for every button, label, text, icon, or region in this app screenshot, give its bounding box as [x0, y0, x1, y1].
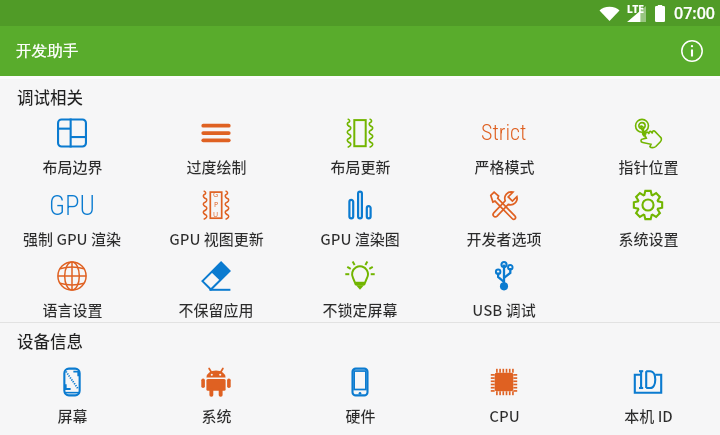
staticText: 不锁定屏幕: [322, 299, 398, 321]
staticText: LTE: [627, 2, 644, 16]
button[interactable]: About: [672, 31, 712, 71]
button[interactable]: CPU: [432, 363, 576, 434]
staticText: 布局更新: [330, 156, 391, 178]
staticText: GPU: [49, 190, 95, 220]
staticText: 严格模式: [474, 156, 535, 178]
staticText: P: [214, 200, 219, 210]
staticText: 开发者选项: [466, 228, 542, 250]
button[interactable]: 硬件: [288, 363, 432, 434]
button[interactable]: 不保留应用: [144, 257, 288, 322]
staticText: Strict: [481, 120, 527, 146]
button[interactable]: 开发者选项: [432, 186, 576, 257]
staticText: 屏幕: [57, 405, 88, 427]
staticText: USB 调试: [472, 299, 536, 321]
button[interactable]: 屏幕: [0, 363, 144, 434]
button[interactable]: 布局更新: [288, 114, 432, 186]
staticText: GPU 视图更新: [169, 228, 264, 250]
button[interactable]: 语言设置: [0, 257, 144, 322]
staticText: 开发助手: [16, 41, 79, 61]
button[interactable]: 本机 ID: [576, 363, 720, 434]
button[interactable]: Strict: [432, 114, 576, 186]
staticText: 系统设置: [618, 228, 679, 250]
staticText: 07:00: [674, 2, 715, 24]
staticText: 指针位置: [618, 156, 679, 178]
staticText: G: [213, 190, 219, 200]
button[interactable]: 过度绘制: [144, 114, 288, 186]
button[interactable]: 系统设置: [576, 186, 720, 257]
staticText: 过度绘制: [186, 156, 247, 178]
staticText: 硬件: [345, 405, 376, 427]
button[interactable]: 系统: [144, 363, 288, 434]
staticText: 语言设置: [42, 299, 103, 321]
button[interactable]: USB 调试: [432, 257, 576, 322]
staticText: GPU 渲染图: [320, 228, 400, 250]
staticText: 设备信息: [17, 329, 83, 353]
staticText: 强制 GPU 渲染: [23, 228, 121, 250]
staticText: 调试相关: [17, 85, 83, 109]
staticText: CPU: [489, 405, 520, 427]
staticText: 系统: [201, 405, 232, 427]
button[interactable]: 不锁定屏幕: [288, 257, 432, 322]
button[interactable]: GPU 渲染图: [288, 186, 432, 257]
staticText: 不保留应用: [178, 299, 254, 321]
staticText: 本机 ID: [624, 405, 673, 427]
button[interactable]: G: [144, 186, 288, 257]
staticText: U: [213, 210, 219, 220]
staticText: 布局边界: [42, 156, 103, 178]
button[interactable]: 布局边界: [0, 114, 144, 186]
button[interactable]: GPU: [0, 186, 144, 257]
button[interactable]: 指针位置: [576, 114, 720, 186]
